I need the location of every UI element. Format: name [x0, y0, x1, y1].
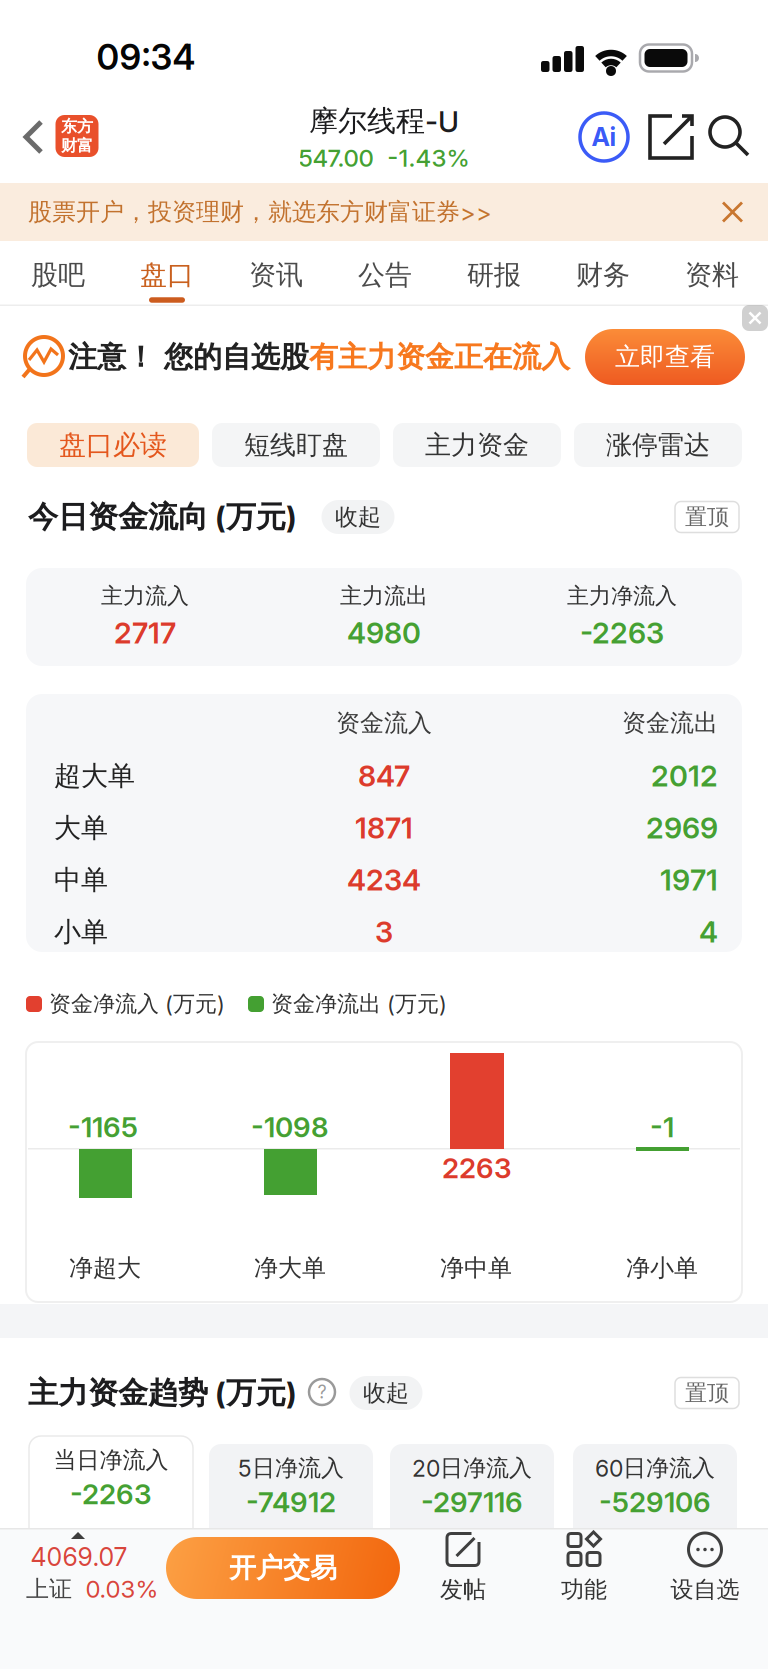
button[interactable]: 短线盯盘 — [212, 423, 380, 467]
button[interactable]: 涨停雷达 — [574, 423, 742, 467]
button[interactable]: 开户交易 — [166, 1537, 400, 1599]
button[interactable]: 股票开户，投资理财，就选东方财富证券>> — [0, 183, 768, 241]
staticText: 研报 — [467, 258, 521, 292]
staticText: 4069.07 — [30, 1542, 127, 1572]
button[interactable]: 股吧 — [10, 246, 106, 304]
button[interactable]: 资料 — [664, 246, 760, 304]
staticText: 主力净流入 — [567, 582, 677, 610]
staticText: 开户交易 — [229, 1551, 337, 1585]
staticText: 4980 — [347, 615, 421, 651]
staticText: 盘口必读 — [59, 428, 167, 462]
staticText: -1098 — [251, 1110, 329, 1144]
staticText: -1.43% — [387, 143, 469, 172]
staticText: 净中单 — [440, 1253, 512, 1283]
staticText: 上证 — [26, 1574, 72, 1603]
staticText: 1971 — [660, 862, 718, 898]
staticText: 注意！ 您的自选股 — [68, 339, 309, 375]
staticText: 主力流出 — [340, 582, 428, 610]
staticText: 0.03% — [85, 1574, 158, 1603]
staticText: 资讯 — [249, 258, 303, 292]
button[interactable]: Back — [23, 120, 45, 154]
button[interactable]: 主力资金 — [393, 423, 561, 467]
button[interactable]: 收起 — [349, 1376, 422, 1410]
button[interactable]: 立即查看 — [585, 329, 745, 385]
staticText: 资金流出 — [622, 708, 718, 738]
staticText: 股吧 — [31, 258, 85, 292]
staticText: 股票开户，投资理财，就选东方财富证券>> — [28, 197, 492, 227]
staticText: 2012 — [651, 758, 718, 794]
staticText: 净大单 — [254, 1253, 326, 1283]
staticText: 置顶 — [685, 503, 729, 531]
staticText: 1871 — [355, 810, 413, 846]
button[interactable]: 资讯 — [228, 246, 324, 304]
staticText: -74912 — [246, 1485, 336, 1519]
staticText: 今日资金流向 (万元) — [28, 498, 297, 536]
button[interactable]: 设自选 — [670, 1532, 739, 1604]
staticText: 设自选 — [670, 1575, 739, 1604]
button[interactable]: 公告 — [337, 246, 433, 304]
staticText: 5日净流入 — [238, 1453, 344, 1482]
staticText: -2263 — [70, 1477, 152, 1511]
button[interactable]: AI 助手 — [578, 111, 630, 163]
button[interactable]: 发帖 — [440, 1532, 486, 1604]
button[interactable]: 20日净流入 — [390, 1444, 554, 1564]
button[interactable]: 当日净流入 — [29, 1436, 193, 1556]
staticText: 547.00 — [298, 143, 373, 172]
staticText: 4234 — [347, 862, 421, 898]
staticText: 2717 — [114, 615, 176, 651]
staticText: 发帖 — [440, 1575, 486, 1604]
staticText: -529106 — [599, 1485, 711, 1519]
button[interactable]: 5日净流入 — [209, 1444, 373, 1564]
staticText: 847 — [358, 758, 410, 794]
staticText: 净小单 — [626, 1253, 698, 1283]
staticText: 大单 — [54, 811, 108, 845]
staticText: 09:34 — [96, 36, 195, 78]
staticText: 当日净流入 — [53, 1445, 168, 1474]
staticText: 资金净流入 (万元) — [49, 990, 225, 1018]
button[interactable]: Share — [648, 114, 694, 160]
button[interactable]: 盘口必读 — [27, 423, 199, 467]
button[interactable]: 关闭提示 — [742, 305, 768, 331]
button[interactable]: 置顶 — [675, 1377, 739, 1408]
staticText: 有主力资金正在流入 — [309, 339, 570, 375]
staticText: ? — [317, 1381, 326, 1403]
staticText: 摩尔线程-U — [309, 103, 459, 139]
button[interactable]: 4069.07 — [22, 1528, 182, 1608]
staticText: 主力资金趋势 (万元) — [28, 1374, 297, 1412]
button[interactable]: Search — [708, 115, 750, 157]
staticText: -297116 — [421, 1485, 523, 1519]
staticText: 财务 — [576, 258, 630, 292]
staticText: 短线盯盘 — [244, 429, 348, 461]
staticText: 2263 — [442, 1151, 512, 1185]
staticText: 4 — [699, 914, 718, 950]
staticText: 主力流入 — [101, 582, 189, 610]
staticText: 资金流入 — [336, 708, 432, 738]
staticText: 收起 — [363, 1378, 409, 1407]
staticText: -1165 — [68, 1110, 138, 1144]
staticText: 60日净流入 — [595, 1453, 715, 1482]
staticText: 功能 — [561, 1575, 607, 1604]
staticText: 财富 — [61, 135, 93, 156]
button[interactable]: 功能 — [561, 1532, 607, 1604]
button[interactable]: 东方财富 — [55, 115, 98, 157]
button[interactable]: 盘口 — [119, 246, 215, 304]
staticText: -2263 — [580, 615, 664, 651]
button[interactable]: 60日净流入 — [573, 1444, 737, 1564]
staticText: 3 — [375, 914, 393, 950]
staticText: 2969 — [646, 810, 718, 846]
staticText: Ai — [591, 122, 616, 152]
button[interactable]: 研报 — [446, 246, 542, 304]
button[interactable]: 置顶 — [675, 501, 739, 532]
button[interactable]: 财务 — [555, 246, 651, 304]
staticText: 收起 — [335, 502, 381, 531]
button[interactable]: 收起 — [321, 500, 394, 534]
staticText: 20日净流入 — [412, 1453, 532, 1482]
staticText: -1 — [650, 1110, 674, 1144]
staticText: 立即查看 — [615, 341, 715, 373]
staticText: 资金净流出 (万元) — [271, 990, 447, 1018]
staticText: 置顶 — [685, 1379, 729, 1407]
staticText: 主力资金 — [425, 429, 529, 461]
staticText: 中单 — [54, 863, 108, 897]
staticText: 东方 — [61, 116, 93, 136]
staticText: 涨停雷达 — [606, 429, 710, 461]
